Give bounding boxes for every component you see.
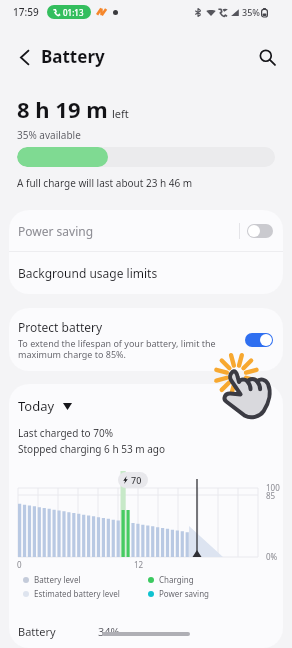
- staticText: Battery level: [34, 574, 81, 585]
- staticText: Estimated battery level: [34, 588, 120, 599]
- staticText: 12: [134, 559, 144, 570]
- staticText: Stopped charging 6 h 53 m ago: [18, 442, 166, 456]
- staticText: Charging: [159, 574, 194, 585]
- staticText: A full charge will last about 23 h 46 m: [17, 176, 193, 190]
- staticText: Last charged to 70%: [18, 426, 114, 440]
- staticText: 0%: [266, 551, 278, 562]
- staticText: Power saving: [18, 223, 94, 239]
- staticText: 85: [266, 490, 276, 501]
- staticText: left: [112, 106, 129, 121]
- staticText: 70: [131, 474, 142, 486]
- button[interactable]: Background usage limits: [9, 252, 283, 294]
- button[interactable]: Power saving: [9, 210, 283, 251]
- button[interactable]: Protect battery: [9, 308, 283, 371]
- button[interactable]: Search: [249, 39, 285, 75]
- staticText: Power saving: [159, 588, 210, 599]
- staticText: 35%: [242, 6, 260, 18]
- staticText: 01:13: [63, 7, 84, 18]
- staticText: Background usage limits: [18, 265, 158, 281]
- button[interactable]: Battery: [18, 624, 274, 648]
- staticText: 100: [266, 482, 280, 493]
- staticText: 17:59: [13, 5, 39, 19]
- staticText: Battery: [18, 624, 56, 639]
- staticText: 8 h 19 m: [17, 94, 108, 124]
- button[interactable]: Power saving: [247, 224, 273, 238]
- staticText: 34%: [98, 624, 120, 639]
- button[interactable]: Protect battery: [245, 333, 273, 347]
- staticText: To extend the lifespan of your battery, …: [18, 337, 237, 360]
- button[interactable]: Today: [18, 397, 72, 415]
- staticText: Today: [18, 397, 55, 415]
- staticText: Battery: [41, 45, 105, 68]
- staticText: 0: [17, 559, 22, 570]
- staticText: 35% available: [17, 128, 81, 142]
- staticText: Protect battery: [18, 319, 103, 335]
- button[interactable]: Navigate up: [6, 39, 42, 75]
